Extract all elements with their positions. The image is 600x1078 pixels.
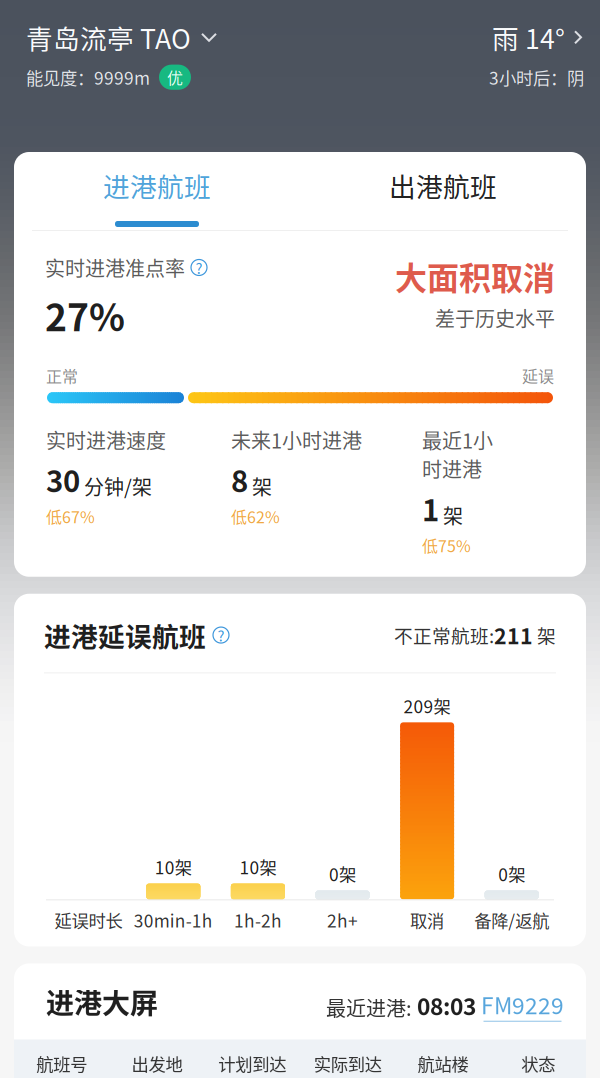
staticText: 进港大屏 <box>46 981 158 1022</box>
button[interactable]: 青岛流亭 TAO <box>26 18 217 57</box>
staticText: 实时进港速度 <box>46 425 166 454</box>
staticText: 能见度：9999m <box>26 65 150 90</box>
staticText: 差于历史水平 <box>435 303 555 332</box>
staticText: 30min-1h <box>134 907 213 932</box>
staticText: 8 <box>231 458 248 501</box>
staticText: FM9229 <box>481 988 564 1021</box>
staticText: 优 <box>167 66 183 89</box>
staticText: 实际到达 <box>314 1051 382 1076</box>
staticText: 架 <box>439 501 463 530</box>
staticText: 27% <box>45 288 125 342</box>
button[interactable]: FM9229 <box>481 988 564 1022</box>
staticText: 实时进港准点率 <box>45 253 185 282</box>
staticText: 延误 <box>522 364 554 387</box>
staticText: 最近1小时进港 <box>422 425 493 483</box>
staticText: 1h-2h <box>234 907 282 932</box>
staticText: 航班号 <box>36 1051 87 1076</box>
staticText: 状态 <box>521 1051 555 1076</box>
staticText: 备降/返航 <box>474 907 549 932</box>
staticText: 延误时长 <box>54 907 122 932</box>
staticText: 架 <box>248 472 272 501</box>
staticText: 2h+ <box>327 907 358 932</box>
staticText: 1 <box>422 487 439 530</box>
staticText: 低62% <box>231 505 280 528</box>
staticText: 航站楼 <box>417 1051 468 1076</box>
staticText: 211 <box>494 620 533 650</box>
staticText: 低75% <box>422 534 471 557</box>
staticText: 不正常航班: <box>394 621 494 648</box>
staticText: 209架 <box>404 693 451 718</box>
staticText: 30 <box>46 458 80 501</box>
staticText: 最近进港: <box>326 993 412 1022</box>
staticText: 出发地 <box>131 1051 182 1076</box>
staticText: 雨 14° <box>492 18 565 57</box>
button[interactable]: 进港航班 <box>14 152 300 230</box>
staticText: 未来1小时进港 <box>231 425 362 454</box>
staticText: 进港航班 <box>103 166 211 205</box>
staticText: 低67% <box>46 505 95 528</box>
staticText: 10架 <box>239 854 276 879</box>
staticText: 0架 <box>498 861 525 886</box>
staticText: 分钟/架 <box>80 472 152 501</box>
staticText: 3小时后：阴 <box>489 65 584 90</box>
staticText: 0架 <box>329 861 356 886</box>
staticText: 架 <box>533 621 556 648</box>
staticText: ? <box>195 257 202 278</box>
button[interactable]: 雨 14° <box>489 18 584 90</box>
staticText: 取消 <box>410 907 444 932</box>
staticText: 10架 <box>155 854 192 879</box>
staticText: 计划到达 <box>218 1051 286 1076</box>
staticText: 正常 <box>46 364 78 387</box>
staticText: 大面积取消 <box>395 253 555 299</box>
staticText: 进港延误航班 <box>44 616 206 654</box>
staticText: 青岛流亭 TAO <box>26 18 191 57</box>
staticText: 08:03 <box>412 989 481 1022</box>
button[interactable]: 出港航班 <box>300 152 586 230</box>
staticText: ? <box>217 624 224 646</box>
staticText: 出港航班 <box>389 166 497 205</box>
